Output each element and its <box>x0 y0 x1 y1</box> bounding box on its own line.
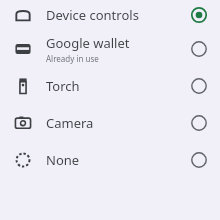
staticText: Camera <box>46 114 94 132</box>
staticText: Already in use <box>46 53 99 64</box>
other: None <box>14 151 32 169</box>
other: Google wallet <box>14 40 32 58</box>
staticText: Torch <box>46 77 80 95</box>
button[interactable]: Device controls <box>0 0 220 30</box>
button[interactable]: None <box>0 141 220 178</box>
button[interactable]: Google wallet <box>0 30 220 68</box>
staticText: None <box>46 151 80 169</box>
other: Camera <box>14 114 32 132</box>
staticText: Device controls <box>46 6 139 24</box>
other: Torch <box>14 77 32 95</box>
button[interactable]: Camera <box>0 104 220 141</box>
staticText: Google wallet <box>46 34 130 52</box>
button[interactable]: Torch <box>0 68 220 104</box>
other: Device controls <box>14 6 32 24</box>
